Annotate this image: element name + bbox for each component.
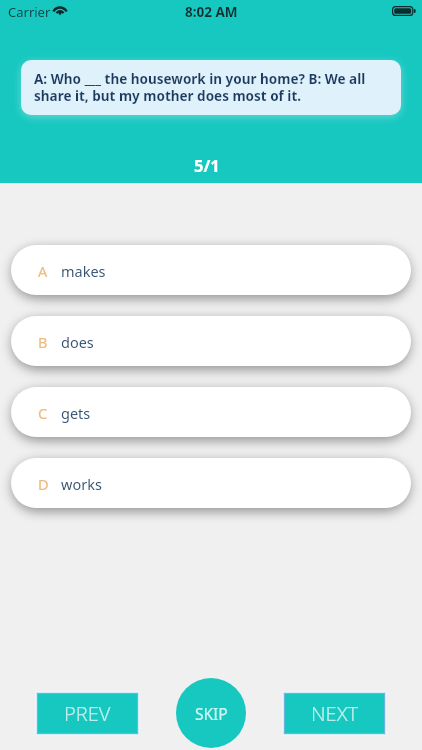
staticText: SKIP [195,703,228,724]
button[interactable]: A [11,245,411,295]
button[interactable]: SKIP [176,678,246,748]
staticText: makes [61,261,106,281]
staticText: does [61,332,94,352]
staticText: 5/1 [194,154,220,176]
staticText: 8:02 AM [185,3,238,21]
staticText: Carrier [8,3,51,21]
button[interactable]: B [11,316,411,366]
staticText: PREV [64,700,111,727]
button[interactable]: D [11,458,411,508]
staticText: A [38,261,48,281]
staticText: C [38,403,48,423]
button[interactable]: PREV [38,694,137,733]
staticText: works [61,474,102,494]
button[interactable]: NEXT [285,694,384,733]
button[interactable]: C [11,387,411,437]
staticText: NEXT [311,700,359,727]
staticText: A: Who ___ the housework in your home? B… [34,70,389,105]
staticText: D [38,474,49,494]
staticText: gets [61,403,91,423]
staticText: B [38,332,48,352]
